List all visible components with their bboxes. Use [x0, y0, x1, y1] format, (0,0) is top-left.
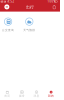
staticText: 天气预报	[23, 28, 35, 32]
staticText: 我的	[48, 94, 54, 98]
staticText: 消息	[33, 94, 39, 98]
button[interactable]: 服务	[15, 88, 29, 100]
button[interactable]: App logo	[4, 4, 10, 10]
button[interactable]: 公交查询	[1, 18, 16, 32]
button[interactable]: Scan code	[52, 4, 57, 9]
button[interactable]: 天气预报	[22, 18, 37, 32]
button[interactable]: 首页	[0, 88, 15, 100]
staticText: 服务	[19, 94, 25, 98]
button[interactable]: 消息	[29, 88, 44, 100]
staticText: 首页	[4, 94, 10, 98]
staticText: 出行	[26, 5, 34, 10]
button[interactable]: 我的	[44, 88, 58, 100]
staticText: 公交查询	[2, 28, 14, 32]
staticText: 100%	[48, 0, 56, 3]
staticText: 中国移动 4:52	[0, 0, 14, 3]
